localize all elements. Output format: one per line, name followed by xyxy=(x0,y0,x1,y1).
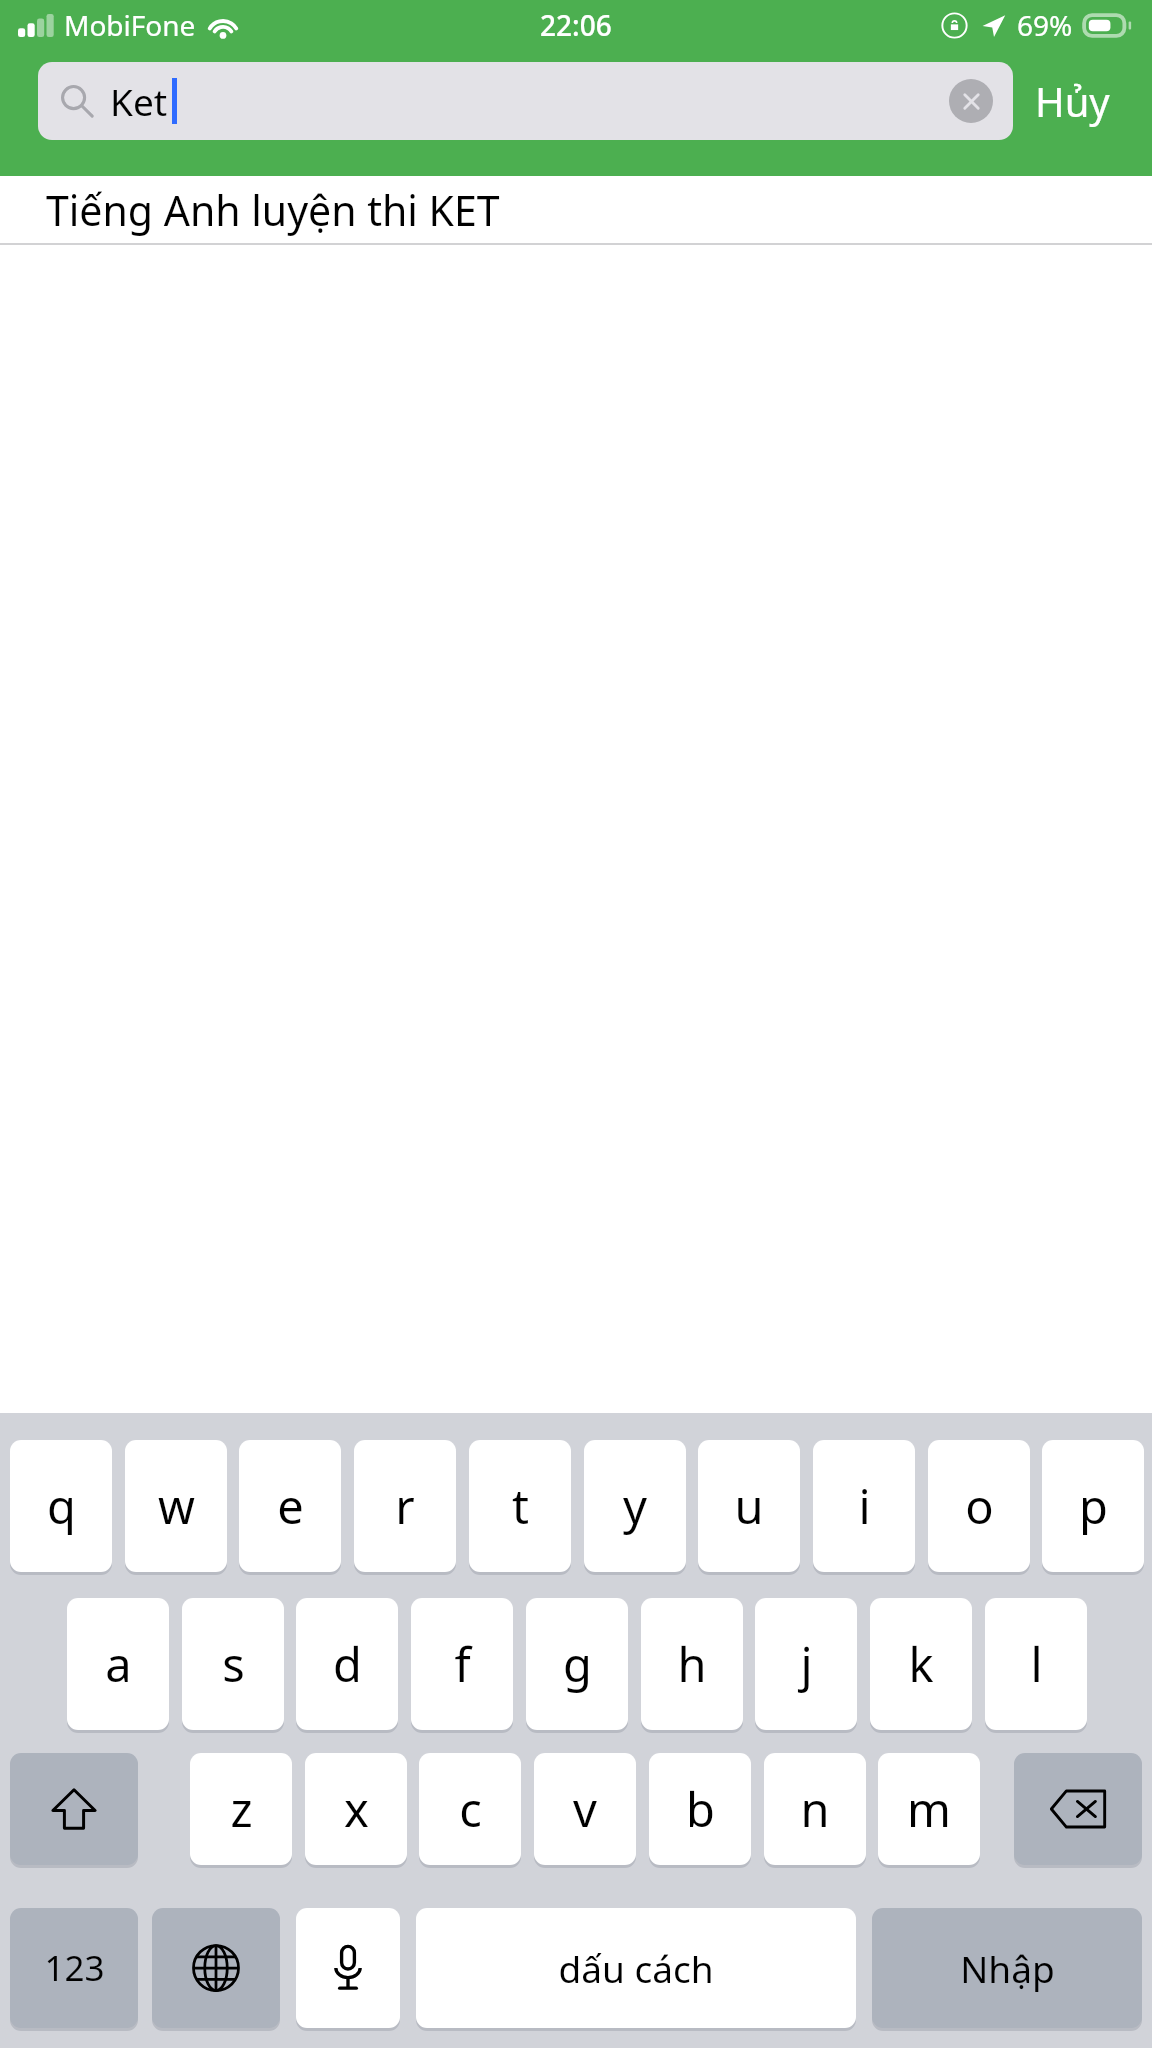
button[interactable]: a xyxy=(67,1598,169,1730)
button[interactable]: u xyxy=(698,1440,800,1572)
staticText: k xyxy=(908,1632,934,1696)
staticText: j xyxy=(800,1632,813,1696)
button[interactable]: t xyxy=(469,1440,571,1572)
staticText: x xyxy=(344,1777,369,1841)
button[interactable]: Tiếng Anh luyện thi KET xyxy=(0,176,1152,243)
staticText: p xyxy=(1079,1474,1108,1538)
staticText: i xyxy=(858,1474,871,1538)
button[interactable]: j xyxy=(755,1598,857,1730)
staticText: n xyxy=(800,1777,830,1841)
button[interactable]: i xyxy=(813,1440,915,1572)
staticText: d xyxy=(333,1632,362,1696)
staticText: g xyxy=(563,1632,592,1696)
button[interactable]: Dictation xyxy=(296,1908,400,2028)
staticText: t xyxy=(512,1474,529,1538)
button[interactable]: c xyxy=(419,1753,521,1865)
staticText: o xyxy=(965,1474,994,1538)
staticText: c xyxy=(459,1777,482,1841)
button[interactable]: y xyxy=(584,1440,686,1572)
staticText: q xyxy=(47,1474,76,1538)
staticText: Ket xyxy=(110,76,168,126)
staticText: Tiếng Anh luyện thi KET xyxy=(46,182,500,238)
staticText: m xyxy=(907,1777,951,1841)
button[interactable]: Shift xyxy=(10,1753,138,1865)
button[interactable]: m xyxy=(878,1753,980,1865)
staticText: dấu cách xyxy=(558,1943,714,1993)
button[interactable]: w xyxy=(125,1440,227,1572)
button[interactable]: p xyxy=(1042,1440,1144,1572)
button[interactable]: Nhập xyxy=(872,1908,1142,2028)
staticText: y xyxy=(623,1474,647,1538)
staticText: Hủy xyxy=(1035,74,1110,128)
staticText: b xyxy=(686,1777,715,1841)
button[interactable]: h xyxy=(641,1598,743,1730)
staticText: h xyxy=(677,1632,707,1696)
button[interactable]: g xyxy=(526,1598,628,1730)
button[interactable]: x xyxy=(305,1753,407,1865)
button[interactable]: o xyxy=(928,1440,1030,1572)
button[interactable]: q xyxy=(10,1440,112,1572)
button[interactable]: Hủy xyxy=(1013,62,1132,140)
button[interactable]: v xyxy=(534,1753,636,1865)
button[interactable]: dấu cách xyxy=(416,1908,856,2028)
button[interactable]: k xyxy=(870,1598,972,1730)
staticText: z xyxy=(230,1777,253,1841)
staticText: l xyxy=(1030,1632,1043,1696)
staticText: Nhập xyxy=(960,1943,1055,1993)
button[interactable]: Backspace xyxy=(1014,1753,1142,1865)
staticText: w xyxy=(158,1474,195,1538)
staticText: 22:06 xyxy=(540,6,612,44)
staticText: MobiFone xyxy=(64,6,196,44)
staticText: 69% xyxy=(1017,6,1073,44)
button[interactable]: r xyxy=(354,1440,456,1572)
button[interactable]: n xyxy=(764,1753,866,1865)
button[interactable]: d xyxy=(296,1598,398,1730)
staticText: r xyxy=(395,1474,415,1538)
button[interactable]: z xyxy=(190,1753,292,1865)
staticText: s xyxy=(222,1632,245,1696)
button[interactable]: Ket xyxy=(38,62,1013,140)
button[interactable]: e xyxy=(239,1440,341,1572)
staticText: a xyxy=(105,1632,132,1696)
staticText: e xyxy=(277,1474,304,1538)
staticText: f xyxy=(454,1632,471,1696)
button[interactable]: s xyxy=(182,1598,284,1730)
button[interactable]: Change keyboard xyxy=(152,1908,280,2028)
button[interactable]: l xyxy=(985,1598,1087,1730)
staticText: v xyxy=(573,1777,597,1841)
button[interactable]: Clear text xyxy=(949,79,993,123)
staticText: 123 xyxy=(44,1944,105,1992)
button[interactable]: f xyxy=(411,1598,513,1730)
button[interactable]: b xyxy=(649,1753,751,1865)
staticText: u xyxy=(734,1474,764,1538)
button[interactable]: 123 xyxy=(10,1908,138,2028)
